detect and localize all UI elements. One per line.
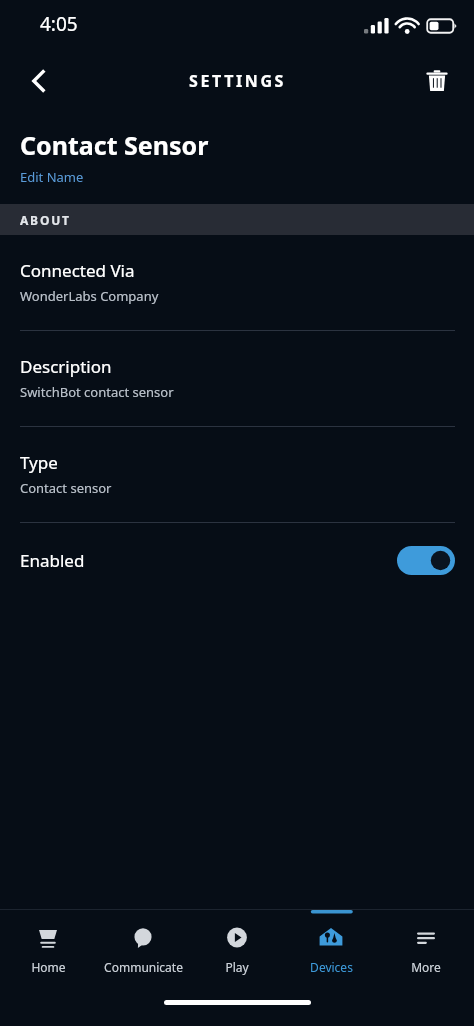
staticText: Enabled <box>20 549 85 572</box>
staticText: Contact sensor <box>20 479 112 497</box>
staticText: Edit Name <box>20 168 84 186</box>
staticText: Type <box>20 451 58 474</box>
staticText: ABOUT <box>20 212 71 228</box>
button[interactable]: Description <box>0 331 474 427</box>
staticText: Description <box>20 355 112 378</box>
staticText: SETTINGS <box>189 70 286 92</box>
button[interactable]: Communicate <box>97 910 189 986</box>
button[interactable]: Edit Name <box>20 168 84 186</box>
staticText: Devices <box>310 959 353 975</box>
button[interactable]: Home <box>2 910 94 986</box>
button[interactable]: Enabled <box>0 523 474 597</box>
staticText: Communicate <box>104 959 183 975</box>
staticText: 4:05 <box>40 11 78 37</box>
button[interactable]: More <box>380 910 472 986</box>
button[interactable]: Type <box>0 427 474 523</box>
button[interactable]: Devices <box>285 910 377 986</box>
staticText: Play <box>225 959 249 975</box>
staticText: SwitchBot contact sensor <box>20 383 174 401</box>
staticText: More <box>411 959 441 975</box>
staticText: Connected Via <box>20 259 135 282</box>
button[interactable]: Play <box>191 910 283 986</box>
staticText: Contact Sensor <box>20 128 209 162</box>
button[interactable]: Delete <box>410 54 464 108</box>
staticText: WonderLabs Company <box>20 287 159 305</box>
staticText: Home <box>31 959 66 975</box>
button[interactable]: Connected Via <box>0 235 474 331</box>
button[interactable]: Back <box>12 54 66 108</box>
